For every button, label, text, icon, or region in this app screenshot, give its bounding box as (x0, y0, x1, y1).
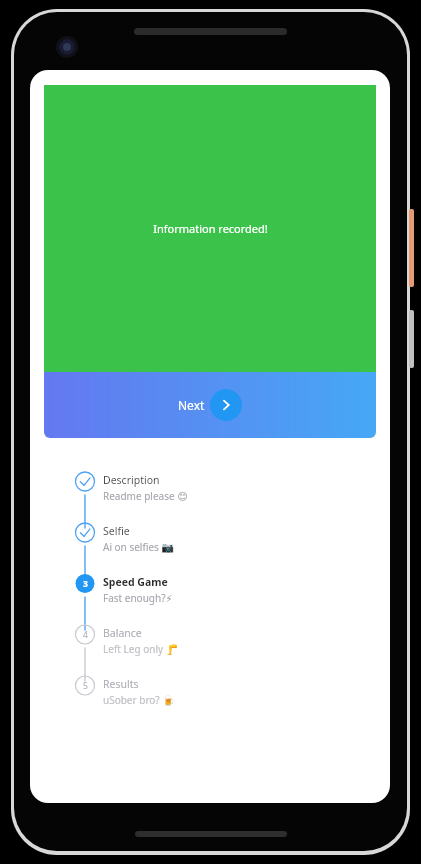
staticText: Readme please 😊 (103, 489, 188, 503)
staticText: uSober bro? 🍺 (103, 693, 175, 707)
staticText: Ai on selfies 📷 (103, 540, 174, 554)
staticText: Next (178, 397, 205, 413)
button[interactable]: Selfie (67, 522, 390, 573)
button[interactable]: Next (44, 372, 376, 438)
button[interactable]: Description (67, 471, 390, 522)
other: Next (210, 389, 242, 421)
button[interactable]: 3 (67, 573, 390, 624)
staticText: 3 (83, 578, 88, 590)
staticText: Information recorded! (153, 221, 268, 236)
staticText: Speed Game (103, 575, 168, 589)
staticText: Left Leg only 🦵 (103, 642, 179, 656)
staticText: Balance (103, 626, 142, 640)
button[interactable]: 4 (67, 624, 390, 675)
button[interactable]: 5 (67, 675, 390, 726)
staticText: Results (103, 677, 139, 691)
staticText: Description (103, 473, 160, 487)
staticText: Selfie (103, 524, 130, 538)
staticText: Fast enough?⚡ (103, 591, 173, 605)
staticText: 4 (83, 629, 88, 641)
staticText: 5 (83, 680, 88, 692)
